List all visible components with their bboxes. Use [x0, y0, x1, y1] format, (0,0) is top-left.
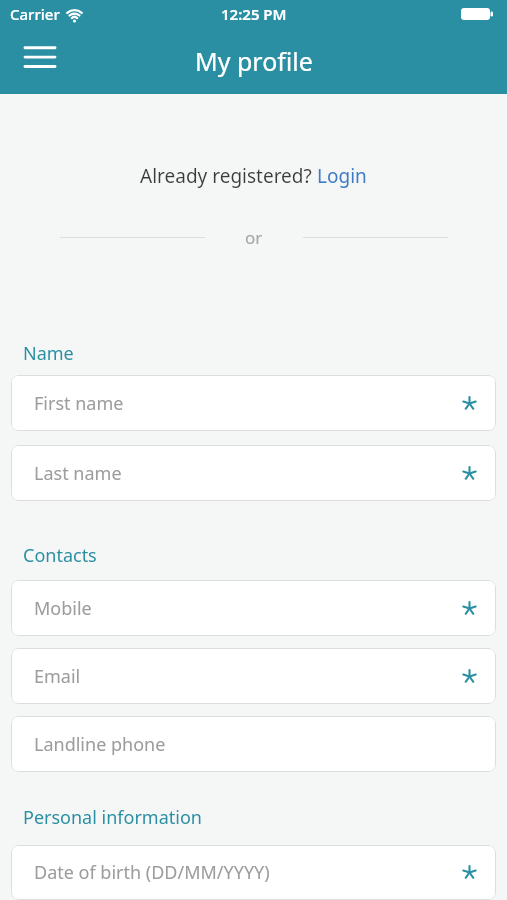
button[interactable]: Date of birth (DD/MM/YYYY)	[11, 845, 496, 900]
staticText: or	[245, 226, 263, 249]
staticText: Personal information	[23, 805, 202, 830]
staticText: First name	[34, 391, 124, 416]
button[interactable]: Login	[317, 163, 367, 189]
staticText: 12:25 PM	[221, 4, 287, 24]
staticText: Date of birth (DD/MM/YYYY)	[34, 860, 270, 885]
staticText: Email	[34, 664, 81, 689]
button[interactable]: First name	[11, 375, 496, 431]
staticText: Already registered?	[140, 163, 317, 189]
button[interactable]: Email	[11, 648, 496, 704]
staticText: Last name	[34, 461, 122, 486]
staticText: Mobile	[34, 596, 92, 621]
button[interactable]	[18, 39, 62, 75]
button[interactable]: Landline phone	[11, 716, 496, 772]
staticText: My profile	[195, 44, 313, 78]
button[interactable]: Mobile	[11, 580, 496, 636]
staticText: Contacts	[23, 543, 97, 568]
staticText: Name	[23, 341, 74, 366]
button[interactable]: Last name	[11, 445, 496, 501]
staticText: Carrier	[10, 4, 60, 24]
staticText: Landline phone	[34, 732, 166, 757]
